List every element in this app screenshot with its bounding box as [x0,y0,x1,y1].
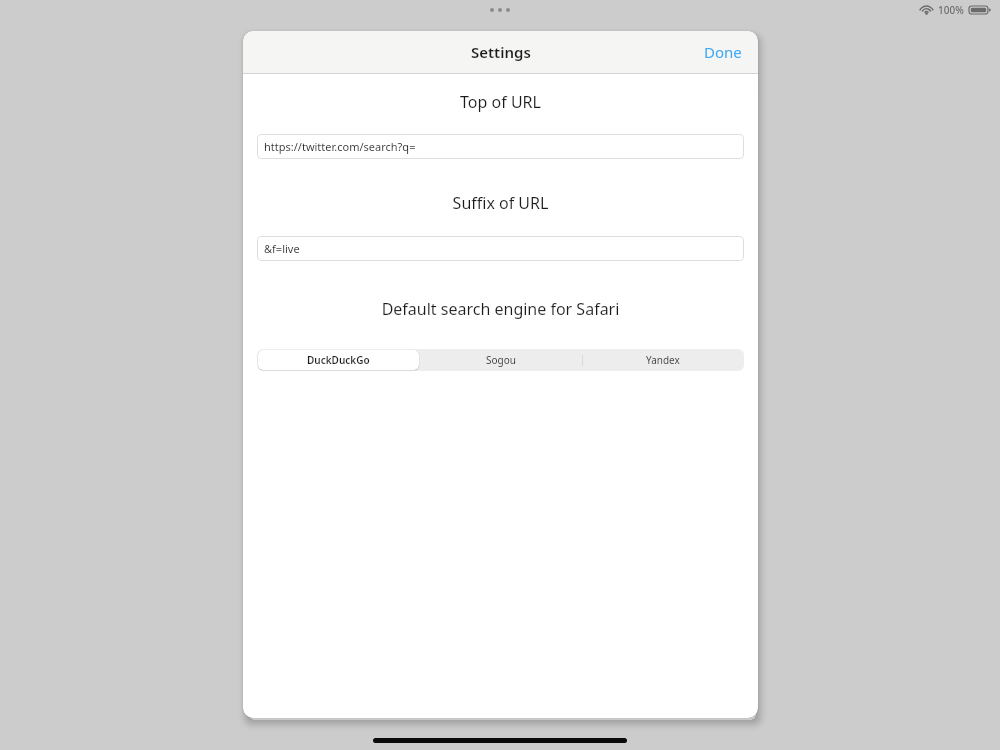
staticText: 100% [938,3,964,17]
other: Wi-Fi [920,5,933,15]
staticText: Sogou [486,353,516,367]
staticText: Default search engine for Safari [243,298,758,320]
staticText: Top of URL [243,91,758,113]
button[interactable]: DuckDuckGo [257,349,420,371]
button[interactable]: https://twitter.com/search?q= [257,134,744,159]
staticText: Done [704,42,742,62]
other: Battery full [969,5,991,15]
staticText: DuckDuckGo [307,353,370,367]
staticText: https://twitter.com/search?q= [264,139,416,154]
button[interactable]: Sogou [420,349,582,371]
button[interactable]: Done [688,33,758,71]
staticText: Yandex [646,353,680,367]
staticText: &f=live [264,241,300,256]
staticText: Settings [471,42,531,62]
staticText: Suffix of URL [243,192,758,214]
button[interactable]: &f=live [257,236,744,261]
button[interactable]: Yandex [582,349,744,371]
